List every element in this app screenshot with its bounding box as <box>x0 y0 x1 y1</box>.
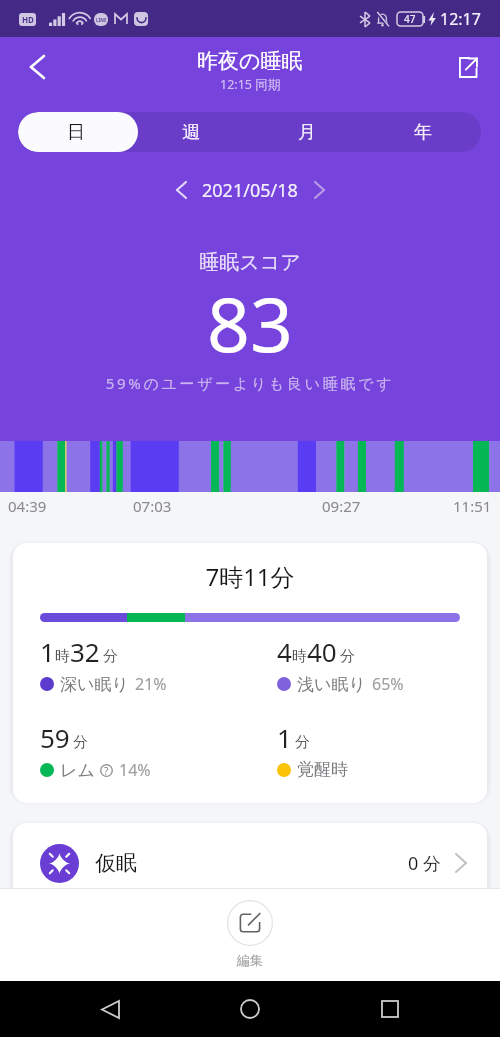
staticText: 編集 <box>237 952 263 968</box>
staticText: 週 <box>182 121 200 144</box>
staticText: 昨夜の睡眠 <box>197 48 303 74</box>
staticText: 分 <box>340 647 355 666</box>
button[interactable]: Next day <box>302 173 336 207</box>
staticText: 07:03 <box>133 496 172 516</box>
staticText: 12:17 <box>440 8 481 30</box>
button[interactable]: Previous day <box>164 173 198 207</box>
staticText: 日 <box>67 121 85 144</box>
staticText: LINE <box>96 17 107 23</box>
staticText: 浅い眠り <box>297 674 366 695</box>
staticText: 47 <box>404 12 416 26</box>
staticText: 年 <box>414 121 432 144</box>
staticText: 0 分 <box>408 851 441 876</box>
button[interactable]: 週 <box>133 112 249 152</box>
staticText: 11:51 <box>453 496 492 516</box>
staticText: 2021/05/18 <box>202 178 298 203</box>
staticText: 1 <box>40 634 55 669</box>
button[interactable]: Back <box>90 989 130 1029</box>
staticText: 04:39 <box>8 496 47 516</box>
staticText: レム <box>60 760 95 781</box>
button[interactable]: Back <box>18 48 56 86</box>
staticText: 深い眠り <box>60 674 129 695</box>
staticText: 12:15 同期 <box>220 76 281 93</box>
staticText: 1 <box>277 720 292 755</box>
button[interactable]: 月 <box>249 112 365 152</box>
staticText: 分 <box>103 647 118 666</box>
staticText: 32 <box>70 634 100 669</box>
staticText: 分 <box>295 733 310 752</box>
staticText: 4 <box>277 634 292 669</box>
button[interactable]: Home <box>230 989 270 1029</box>
staticText: 83 <box>0 272 500 374</box>
staticText: 65% <box>372 673 404 695</box>
button[interactable]: Share <box>448 48 486 86</box>
staticText: 7時11分 <box>13 560 487 593</box>
staticText: 21% <box>135 673 167 695</box>
staticText: 時 <box>55 647 70 666</box>
button[interactable]: Recents <box>370 989 410 1029</box>
staticText: 覚醒時 <box>297 759 348 780</box>
staticText: 分 <box>73 733 88 752</box>
staticText: 睡眠スコア <box>0 250 500 275</box>
staticText: 時 <box>292 647 307 666</box>
staticText: 仮眠 <box>95 850 137 876</box>
staticText: 月 <box>298 121 316 144</box>
button[interactable]: 編集 <box>0 889 500 981</box>
staticText: ? <box>104 764 109 776</box>
button[interactable]: 年 <box>365 112 481 152</box>
staticText: 59%のユーザーよりも良い睡眠です <box>0 373 500 393</box>
staticText: 14% <box>119 759 151 781</box>
staticText: 40 <box>307 634 337 669</box>
button[interactable]: 仮眠 <box>13 823 487 903</box>
button[interactable]: 日 <box>18 112 133 152</box>
staticText: 09:27 <box>322 496 361 516</box>
staticText: 59 <box>40 720 70 755</box>
staticText: HD <box>22 14 34 25</box>
